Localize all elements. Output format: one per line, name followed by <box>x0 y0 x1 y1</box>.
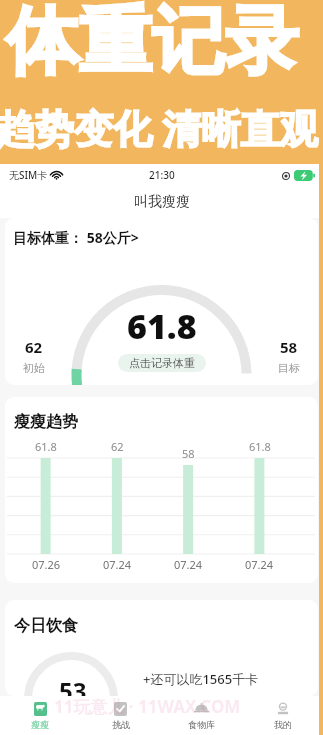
button[interactable]: 目标体重： 58公斤> <box>5 218 318 256</box>
staticText: 目标 <box>278 361 300 375</box>
staticText: 21:30 <box>149 168 175 182</box>
staticText: 58 <box>182 446 195 461</box>
button[interactable]: Profile <box>242 696 323 735</box>
staticText: 趋势变化 清晰直观 <box>0 101 319 154</box>
staticText: 初始 <box>23 361 45 375</box>
staticText: 叫我瘦瘦 <box>134 193 190 211</box>
staticText: 目标体重： 58公斤> <box>13 228 139 247</box>
staticText: 食物库 <box>188 719 215 730</box>
staticText: 今日饮食 <box>14 616 78 636</box>
staticText: 62 <box>111 439 124 454</box>
staticText: 07.24 <box>103 557 132 572</box>
staticText: 体重记录 <box>6 0 298 88</box>
staticText: 53 <box>59 674 87 696</box>
staticText: 61.8 <box>127 303 197 349</box>
staticText: 62 <box>25 337 43 357</box>
staticText: 瘦瘦 <box>31 719 49 730</box>
staticText: 点击记录体重 <box>129 356 195 370</box>
staticText: 61.8 <box>249 439 271 454</box>
staticText: 无SIM卡 <box>9 168 48 182</box>
staticText: 11玩意儿 · 11WAX.COM <box>54 695 241 718</box>
staticText: 我的 <box>274 719 292 730</box>
staticText: 61.8 <box>35 439 57 454</box>
staticText: 07.24 <box>245 557 274 572</box>
staticText: 瘦瘦趋势 <box>14 412 78 432</box>
button[interactable]: Food library <box>161 696 242 735</box>
button[interactable]: Home <box>0 696 80 735</box>
button[interactable]: Challenges <box>80 696 161 735</box>
staticText: +还可以吃1565千卡 <box>143 670 259 688</box>
staticText: 07.26 <box>32 557 61 572</box>
button[interactable]: 点击记录体重 <box>118 354 206 372</box>
staticText: 58 <box>280 337 298 357</box>
staticText: 挑战 <box>112 719 130 730</box>
staticText: 07.24 <box>174 557 203 572</box>
